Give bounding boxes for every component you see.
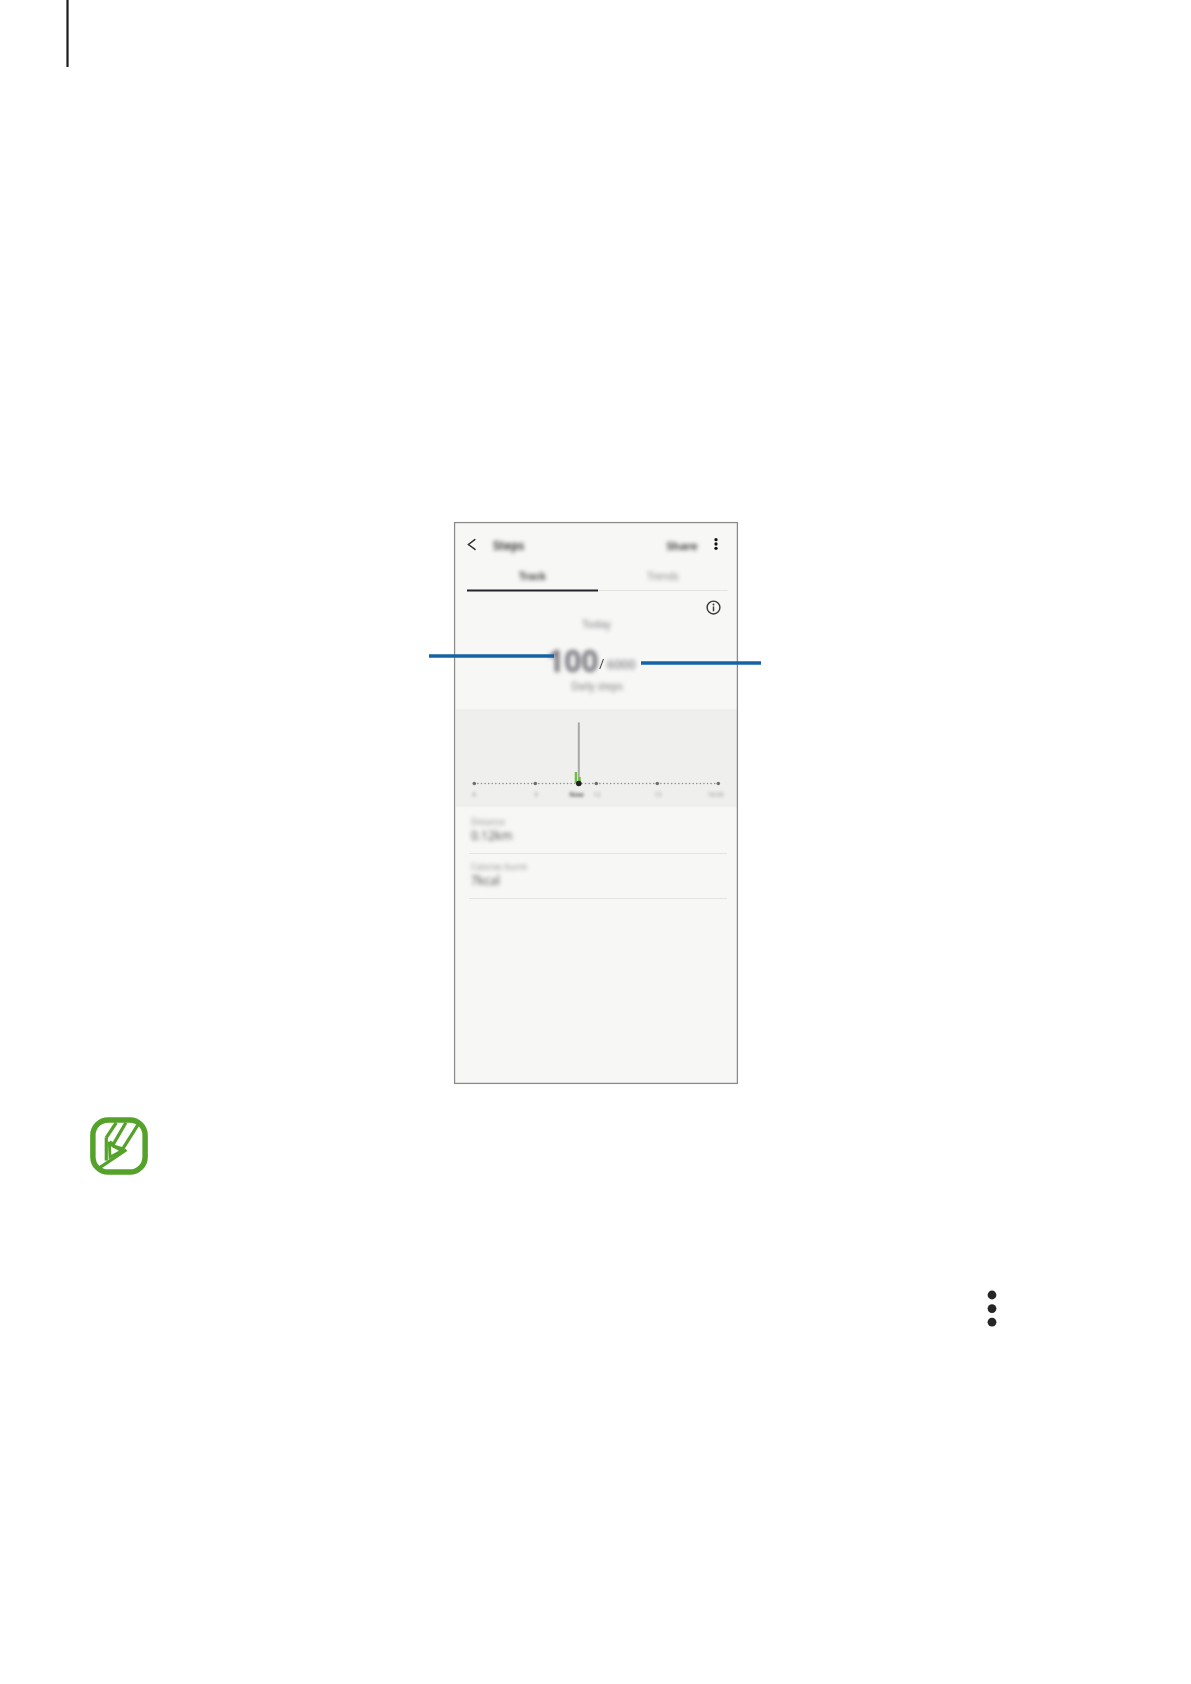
button[interactable]: Steps [493,535,549,557]
staticText: 15 [654,790,662,799]
staticText: Calories burnt [471,861,527,872]
other: Note [88,1115,150,1177]
staticText: / [599,654,605,673]
staticText: 7kcal [471,872,500,888]
staticText: Distance [471,816,505,827]
staticText: Steps [493,538,525,554]
staticText: Trends [647,569,679,583]
button[interactable]: Distance [456,807,737,855]
staticText: Share [666,538,698,553]
staticText: Track [519,569,546,583]
staticText: 6000 [607,656,636,673]
staticText: 18:00 [707,790,724,799]
button[interactable]: Calories burnt [456,852,737,900]
staticText: Daily steps [571,679,623,693]
button[interactable]: Information [703,597,724,618]
staticText: 6 [472,790,476,799]
button[interactable]: More options [706,534,726,554]
button[interactable]: Share [657,534,707,556]
button[interactable]: Back [461,534,481,554]
button[interactable]: More options [980,1286,1004,1330]
button[interactable]: Trends [596,566,729,586]
staticText: 9 [534,790,538,799]
staticText: 12 [593,790,601,799]
button[interactable]: Track [466,566,599,586]
staticText: Now [569,790,584,799]
staticText: 0.12km [471,827,513,843]
staticText: Today [582,617,611,631]
staticText: 100 [547,640,599,676]
